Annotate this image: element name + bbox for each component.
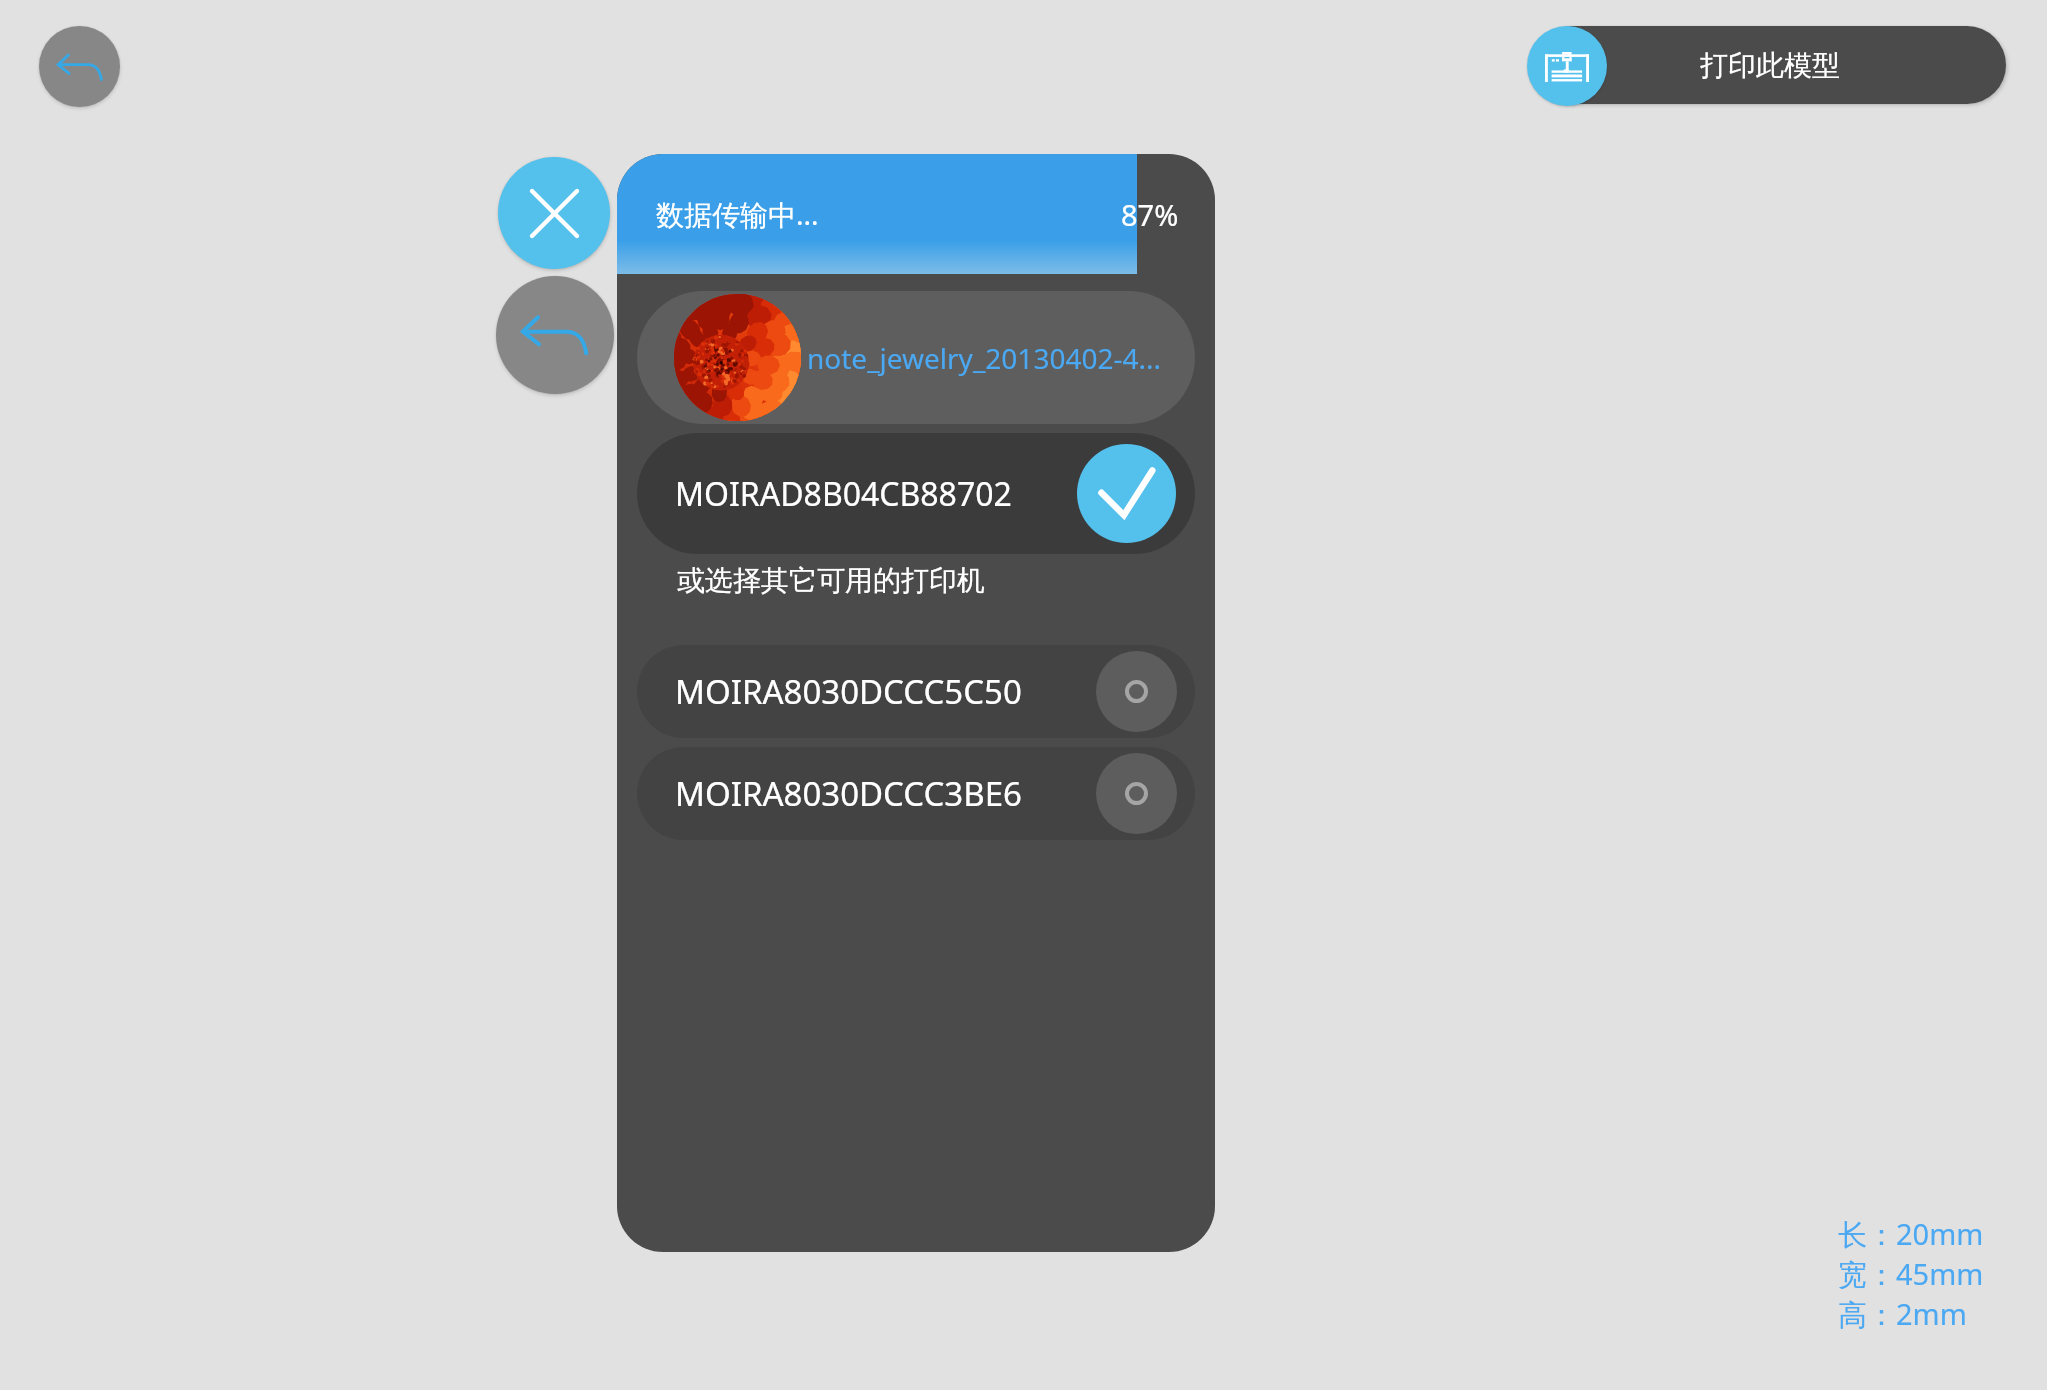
button[interactable]: Close: [498, 157, 610, 269]
staticText: 高：2mm: [1838, 1294, 1967, 1334]
button[interactable]: MOIRA8030DCCC5C50: [637, 645, 1195, 738]
staticText: 或选择其它可用的打印机: [677, 563, 985, 598]
staticText: MOIRAD8B04CB88702: [675, 472, 1012, 516]
button[interactable]: Back: [496, 276, 614, 394]
button[interactable]: 打印此模型: [1527, 26, 2006, 106]
staticText: note_jewelry_20130402-4...: [807, 339, 1162, 377]
staticText: MOIRA8030DCCC5C50: [675, 669, 1022, 714]
staticText: 87%: [1121, 195, 1179, 234]
staticText: 数据传输中...: [656, 195, 819, 233]
button[interactable]: MOIRAD8B04CB88702: [637, 433, 1195, 554]
staticText: 长：20mm: [1838, 1214, 1984, 1254]
staticText: MOIRA8030DCCC3BE6: [675, 771, 1022, 816]
staticText: 打印此模型: [1700, 48, 1840, 83]
button[interactable]: Back: [39, 26, 120, 107]
button[interactable]: MOIRA8030DCCC3BE6: [637, 747, 1195, 840]
staticText: 宽：45mm: [1838, 1254, 1984, 1294]
button[interactable]: note_jewelry_20130402-4...: [637, 291, 1195, 424]
